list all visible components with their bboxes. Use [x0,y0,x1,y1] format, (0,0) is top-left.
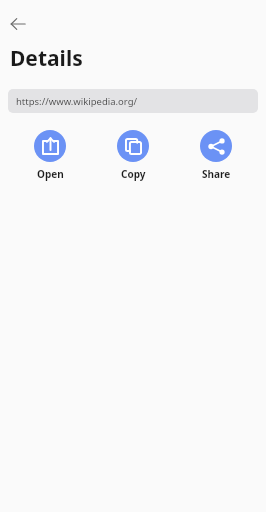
button[interactable]: Copy [99,130,167,181]
button[interactable]: Share [182,130,250,181]
staticText: Share [202,167,231,181]
staticText: Details [10,44,83,73]
staticText: Copy [121,167,146,181]
staticText: Open [37,167,64,181]
staticText: https://www.wikipedia.org/ [16,95,138,108]
button[interactable]: https://www.wikipedia.org/ [8,89,258,113]
button[interactable]: Open [16,130,84,181]
button[interactable]: Back [4,10,32,38]
